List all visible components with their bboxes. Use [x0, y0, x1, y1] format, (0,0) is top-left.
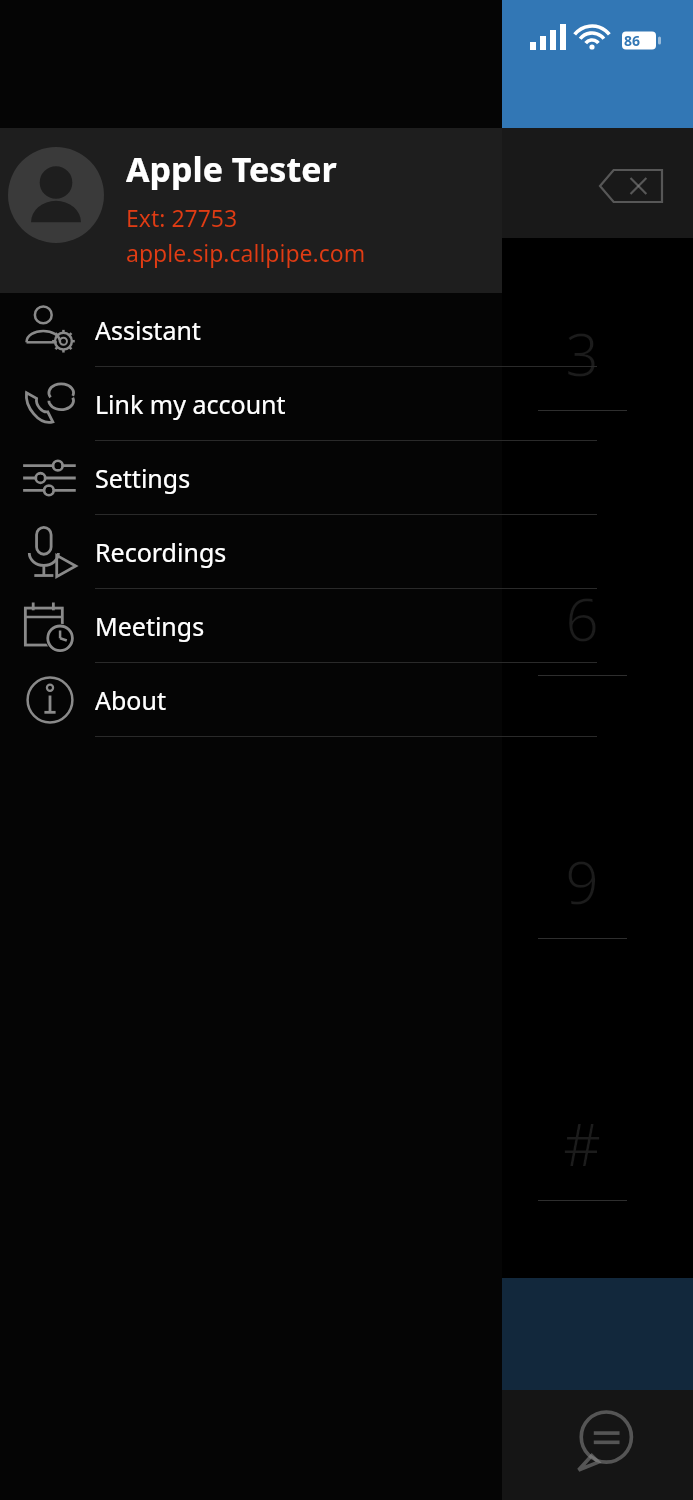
staticText: 9 [565, 842, 599, 921]
button[interactable]: Settings [0, 441, 502, 515]
staticText: Meetings [95, 609, 205, 643]
staticText: 3 [565, 314, 599, 393]
button[interactable]: Backspace [600, 168, 662, 204]
button[interactable]: Meetings [0, 589, 502, 663]
staticText: Assistant [95, 313, 201, 347]
button[interactable]: 6 [520, 573, 644, 663]
staticText: Ext: 27753 [126, 202, 238, 233]
staticText: 86 [624, 31, 641, 50]
button[interactable]: Link my account [0, 367, 502, 441]
staticText: 6 [565, 579, 599, 658]
staticText: Recordings [95, 535, 227, 569]
button[interactable]: Assistant [0, 293, 502, 367]
button[interactable]: 9 [520, 836, 644, 926]
staticText: apple.sip.callpipe.com [126, 237, 366, 268]
button[interactable]: Recordings [0, 515, 502, 589]
staticText: Apple Tester [126, 146, 337, 192]
staticText: Link my account [95, 387, 286, 421]
button[interactable]: 3 [520, 308, 644, 398]
staticText: Settings [95, 461, 191, 495]
staticText: # [563, 1104, 601, 1183]
button[interactable]: About [0, 663, 502, 737]
button[interactable]: Messages [572, 1408, 638, 1474]
button[interactable]: # [520, 1098, 644, 1188]
staticText: Enter a number or an address [150, 170, 487, 203]
staticText: About [95, 683, 166, 717]
